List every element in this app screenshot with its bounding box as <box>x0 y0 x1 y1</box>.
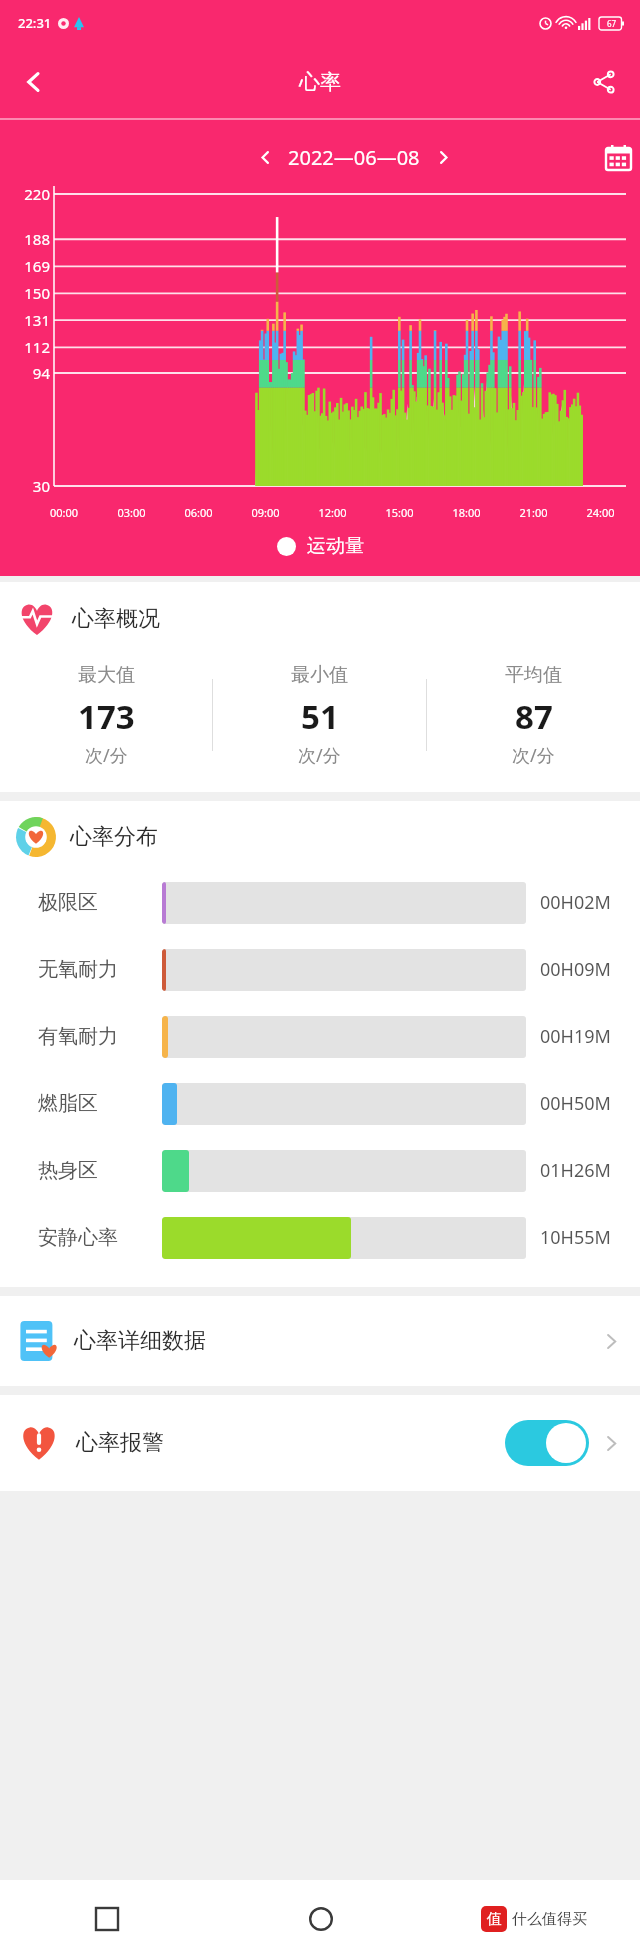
staticText: 心率 <box>299 69 341 95</box>
staticText: 心率分布 <box>70 823 158 851</box>
button[interactable]: Heart rate alarm toggle <box>505 1420 589 1466</box>
staticText: 次/分 <box>512 743 555 768</box>
staticText: 24:00 <box>567 505 634 520</box>
button[interactable]: Home <box>214 1880 427 1958</box>
staticText: 169 <box>8 256 50 276</box>
staticText: 燃脂区 <box>38 1091 156 1116</box>
staticText: 无氧耐力 <box>38 957 156 982</box>
button[interactable]: Pick date <box>596 135 640 179</box>
staticText: 06:00 <box>165 505 232 520</box>
button[interactable]: Recents <box>0 1880 214 1958</box>
staticText: 次/分 <box>298 743 341 768</box>
staticText: 22:31 <box>18 14 52 32</box>
button[interactable]: 心率报警 <box>0 1395 640 1491</box>
staticText: 21:00 <box>500 505 567 520</box>
staticText: 值 <box>487 1910 502 1929</box>
staticText: 09:00 <box>232 505 299 520</box>
staticText: 平均值 <box>505 663 562 687</box>
button[interactable]: 无氧耐力 <box>0 936 640 1003</box>
staticText: 00H50M <box>540 1091 640 1116</box>
staticText: 94 <box>8 363 50 383</box>
staticText: 00H09M <box>540 957 640 982</box>
staticText: 有氧耐力 <box>38 1024 156 1049</box>
staticText: 131 <box>8 310 50 330</box>
staticText: 03:00 <box>98 505 165 520</box>
button[interactable]: Previous day <box>248 140 282 174</box>
staticText: 心率报警 <box>76 1429 164 1457</box>
staticText: 心率概况 <box>72 605 160 633</box>
staticText: 运动量 <box>307 534 364 558</box>
staticText: 15:00 <box>366 505 433 520</box>
staticText: 220 <box>8 184 50 204</box>
staticText: 87 <box>515 694 553 739</box>
button[interactable]: 燃脂区 <box>0 1070 640 1137</box>
button[interactable]: Back <box>8 56 60 108</box>
staticText: 51 <box>301 694 339 739</box>
button[interactable]: 心率详细数据 <box>0 1296 640 1386</box>
staticText: 112 <box>8 337 50 357</box>
staticText: 173 <box>78 694 135 739</box>
staticText: 01H26M <box>540 1158 640 1183</box>
staticText: 150 <box>8 283 50 303</box>
staticText: 00H19M <box>540 1024 640 1049</box>
staticText: 热身区 <box>38 1158 156 1183</box>
staticText: 00H02M <box>540 890 640 915</box>
staticText: 安静心率 <box>38 1225 156 1250</box>
staticText: 最大值 <box>78 663 135 687</box>
staticText: 12:00 <box>299 505 366 520</box>
button[interactable]: Next day <box>426 140 460 174</box>
staticText: 最小值 <box>291 663 348 687</box>
staticText: 2022—06—08 <box>288 144 420 171</box>
button[interactable]: 有氧耐力 <box>0 1003 640 1070</box>
staticText: 00:00 <box>30 505 98 520</box>
staticText: 次/分 <box>85 743 128 768</box>
button[interactable]: 安静心率 <box>0 1204 640 1271</box>
staticText: 30 <box>8 476 50 496</box>
button[interactable]: Share <box>578 56 630 108</box>
staticText: 188 <box>8 229 50 249</box>
staticText: 18:00 <box>433 505 500 520</box>
staticText: 10H55M <box>540 1225 640 1250</box>
button[interactable]: 极限区 <box>0 869 640 936</box>
staticText: 极限区 <box>38 890 156 915</box>
staticText: 67 <box>607 18 617 29</box>
staticText: 什么值得买 <box>512 1910 587 1929</box>
staticText: 心率详细数据 <box>74 1327 206 1355</box>
button[interactable]: 热身区 <box>0 1137 640 1204</box>
